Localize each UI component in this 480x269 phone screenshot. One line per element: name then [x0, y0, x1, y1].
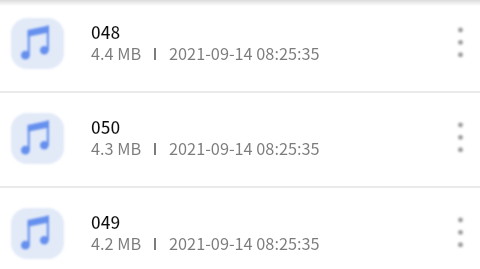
staticText: 2021-09-14 08:25:35 [169, 41, 320, 65]
button[interactable]: More options [440, 212, 480, 252]
staticText: 048 [91, 19, 121, 44]
button[interactable]: 050 [0, 92, 480, 187]
button[interactable]: 048 [0, 0, 480, 92]
staticText: 050 [91, 114, 121, 139]
staticText: 4.4 MB [91, 41, 142, 65]
staticText: 2021-09-14 08:25:35 [169, 231, 320, 255]
button[interactable]: 049 [0, 187, 480, 269]
button[interactable]: More options [440, 22, 480, 62]
staticText: 2021-09-14 08:25:35 [169, 136, 320, 160]
button[interactable]: More options [440, 117, 480, 157]
staticText: 049 [91, 209, 121, 234]
staticText: 4.3 MB [91, 136, 142, 160]
staticText: 4.2 MB [91, 231, 142, 255]
